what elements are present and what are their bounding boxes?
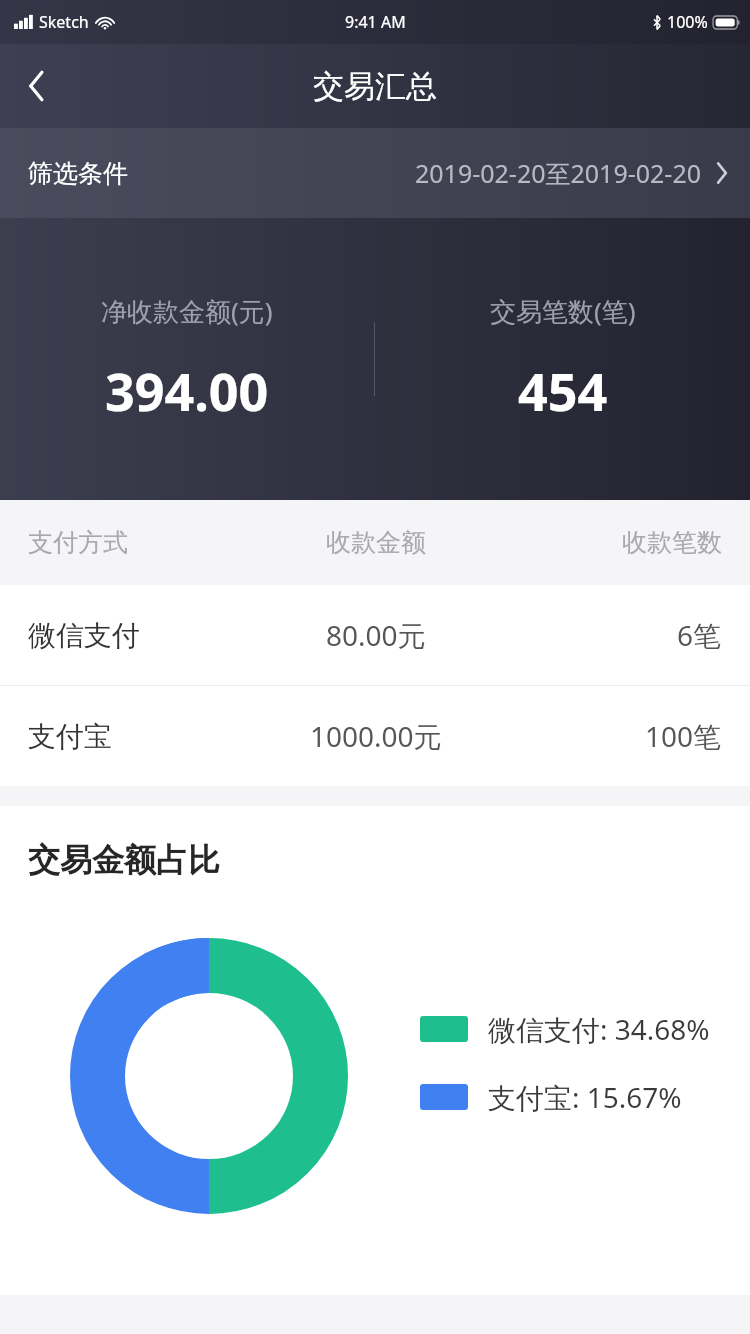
staticText: 收款金额	[326, 527, 426, 558]
staticText: 6笔	[677, 616, 722, 654]
staticText: 净收款金额(元)	[101, 293, 273, 329]
staticText: 支付宝: 15.67%	[488, 1078, 682, 1116]
staticText: 9:41 AM	[345, 11, 406, 33]
button[interactable]: 筛选条件	[0, 128, 750, 218]
staticText: 微信支付: 34.68%	[488, 1010, 710, 1048]
button[interactable]: 微信支付	[0, 585, 750, 685]
staticText: 交易金额占比	[28, 840, 220, 880]
button[interactable]: 微信支付: 34.68%	[420, 1010, 710, 1048]
staticText: Sketch	[39, 11, 89, 33]
staticText: 交易汇总	[313, 67, 437, 106]
staticText: 100%	[667, 11, 708, 33]
staticText: 微信支付	[28, 618, 140, 653]
staticText: 394.00	[105, 355, 269, 426]
staticText: 1000.00元	[310, 717, 442, 755]
staticText: 454	[518, 355, 608, 426]
button[interactable]: Back	[0, 44, 72, 128]
button[interactable]: 支付宝: 15.67%	[420, 1078, 682, 1116]
staticText: 支付方式	[28, 527, 128, 558]
staticText: 收款笔数	[622, 527, 722, 558]
staticText: 支付宝	[28, 719, 112, 754]
staticText: 筛选条件	[28, 158, 128, 189]
staticText: 交易笔数(笔)	[490, 293, 636, 329]
staticText: 80.00元	[326, 616, 426, 654]
staticText: 2019-02-20至2019-02-20	[415, 156, 702, 190]
staticText: 100笔	[645, 717, 722, 755]
button[interactable]: 支付宝	[0, 686, 750, 786]
